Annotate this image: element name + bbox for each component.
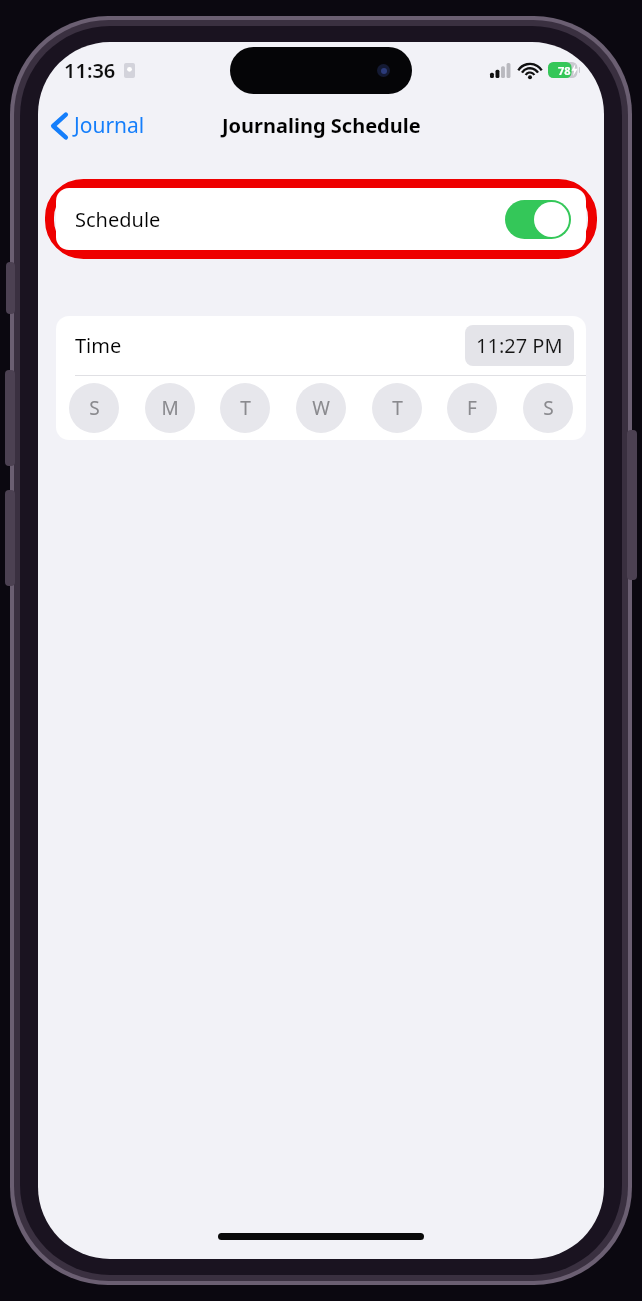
staticText: 78: [558, 63, 571, 78]
button[interactable]: S: [69, 383, 119, 433]
staticText: S: [543, 395, 554, 421]
staticText: S: [89, 395, 100, 421]
staticText: Time: [75, 332, 122, 359]
staticText: Journaling Schedule: [222, 112, 421, 139]
button[interactable]: T: [220, 383, 270, 433]
staticText: W: [312, 395, 330, 421]
button[interactable]: Time: [56, 316, 586, 375]
button[interactable]: Schedule: [56, 188, 586, 250]
button[interactable]: W: [296, 383, 346, 433]
staticText: T: [240, 395, 251, 421]
button[interactable]: Journal: [38, 105, 155, 146]
staticText: 11:36: [64, 57, 116, 84]
button[interactable]: T: [372, 383, 422, 433]
staticText: Journal: [74, 111, 145, 140]
staticText: T: [392, 395, 403, 421]
staticText: F: [467, 395, 477, 421]
button[interactable]: M: [145, 383, 195, 433]
button[interactable]: F: [447, 383, 497, 433]
staticText: 11:27 PM: [476, 332, 563, 359]
button[interactable]: S: [523, 383, 573, 433]
button[interactable]: Schedule toggle, on: [505, 200, 571, 239]
button[interactable]: 11:27 PM: [465, 325, 574, 366]
staticText: M: [161, 395, 179, 421]
staticText: Schedule: [75, 206, 161, 233]
